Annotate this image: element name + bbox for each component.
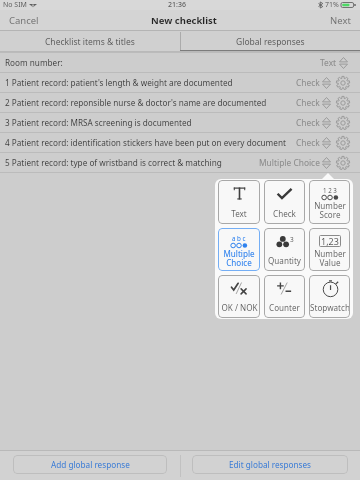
staticText: 71% (325, 0, 339, 10)
button[interactable]: Stopwatch (309, 275, 350, 318)
button[interactable]: Change response type (320, 155, 333, 170)
button[interactable]: Checklist items & titles (0, 31, 180, 52)
staticText: Edit global responses (229, 459, 312, 470)
button[interactable]: Settings (335, 95, 350, 110)
staticText: No SIM (3, 0, 27, 10)
staticText: Counter (269, 302, 300, 313)
staticText: OK / NOK (221, 302, 258, 313)
staticText: 2 Patient record: reponsible nurse & doc… (5, 97, 267, 108)
staticText: Quantity (268, 255, 301, 266)
button[interactable]: Counter (264, 275, 305, 318)
button[interactable]: Settings (335, 135, 350, 150)
staticText: Add global response (51, 459, 130, 470)
staticText: 3 Patient record: MRSA screening is docu… (5, 117, 192, 128)
staticText: Multiple Choice (223, 248, 255, 266)
staticText: Check (296, 97, 320, 108)
staticText: Global responses (236, 36, 305, 48)
staticText: 1 Patient record: patient's length & wei… (5, 77, 233, 88)
staticText: Multiple Choice (259, 157, 320, 168)
staticText: a b c (232, 234, 246, 242)
button[interactable]: OK / NOK (218, 275, 260, 318)
button[interactable]: Text (218, 180, 260, 224)
staticText: Text (231, 208, 247, 219)
button[interactable]: Global responses (180, 31, 360, 52)
button[interactable]: Settings (335, 75, 350, 90)
button[interactable]: Cancel (7, 11, 41, 30)
staticText: 1,23 (321, 235, 339, 247)
button[interactable]: Change response type (320, 115, 333, 130)
button[interactable]: 4 Patient record: identification sticker… (0, 133, 360, 152)
button[interactable]: Change response type (337, 55, 350, 70)
staticText: Number Score (314, 200, 346, 219)
staticText: Number Value (314, 248, 346, 266)
staticText: Next (330, 14, 351, 27)
staticText: 3 (290, 235, 294, 244)
button[interactable]: Settings (335, 115, 350, 130)
staticText: 4 Patient record: identification sticker… (5, 137, 286, 148)
button[interactable]: 2 Patient record: reponsible nurse & doc… (0, 93, 360, 112)
button[interactable]: Room number: (0, 53, 360, 72)
button[interactable]: Change response type (320, 75, 333, 90)
button[interactable]: 3 (264, 228, 305, 271)
button[interactable]: Change response type (320, 135, 333, 150)
button[interactable]: a b c (218, 228, 260, 271)
button[interactable]: Edit global responses (192, 455, 348, 474)
staticText: 5 Patient record: type of wristband is c… (5, 157, 222, 168)
button[interactable]: 5 Patient record: type of wristband is c… (0, 153, 360, 172)
staticText: Cancel (9, 14, 39, 27)
button[interactable]: 3 Patient record: MRSA screening is docu… (0, 113, 360, 132)
staticText: 21:36 (168, 0, 186, 10)
button[interactable]: 1,23 (309, 228, 350, 271)
button[interactable]: Change response type (320, 95, 333, 110)
staticText: Check (296, 77, 320, 88)
staticText: Check (296, 117, 320, 128)
staticText: 1 2 3 (323, 186, 337, 194)
button[interactable]: Check (264, 180, 305, 224)
button[interactable]: 1 Patient record: patient's length & wei… (0, 73, 360, 92)
staticText: New checklist (151, 14, 217, 27)
button[interactable]: Add global response (13, 455, 167, 474)
button[interactable]: Settings (335, 155, 350, 170)
button[interactable]: Next (328, 11, 353, 30)
staticText: Room number: (5, 57, 63, 68)
staticText: Checklist items & titles (45, 36, 135, 48)
staticText: Check (273, 208, 296, 219)
staticText: Check (296, 137, 320, 148)
staticText: Text (320, 57, 337, 68)
staticText: Stopwatch (310, 302, 350, 313)
button[interactable]: 1 2 3 (309, 180, 350, 224)
